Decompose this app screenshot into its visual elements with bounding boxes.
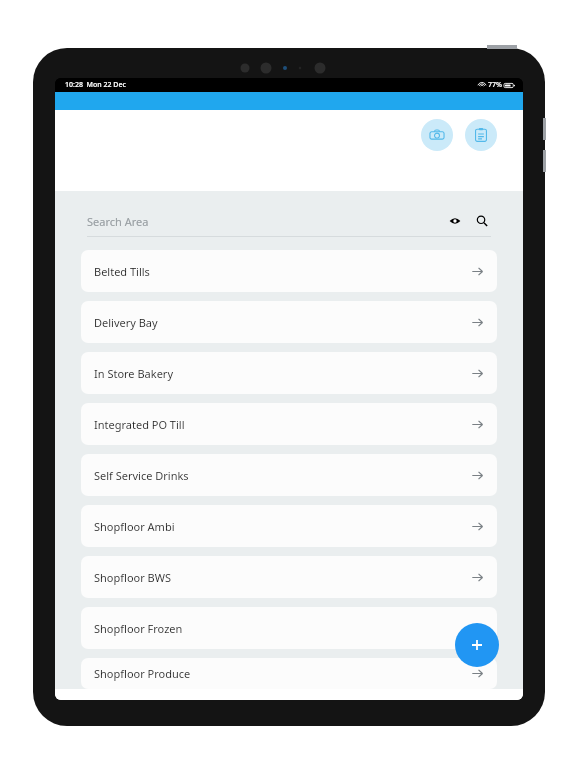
staticText: 77% (488, 80, 502, 90)
staticText: Integrated PO Till (94, 417, 185, 432)
staticText: In Store Bakery (94, 366, 173, 381)
button[interactable]: Shopfloor Ambi (81, 505, 497, 547)
button[interactable]: Search Area (87, 212, 491, 237)
button[interactable]: Self Service Drinks (81, 454, 497, 496)
button[interactable]: Belted Tills (81, 250, 497, 292)
button[interactable]: Shopfloor Produce (81, 658, 497, 689)
button[interactable]: Open checklist (465, 119, 497, 151)
staticText: 10:28 Mon 22 Dec (65, 80, 126, 90)
staticText: Shopfloor Produce (94, 666, 191, 681)
staticText: Search Area (87, 214, 446, 229)
button[interactable]: Search (473, 212, 491, 230)
staticText: Shopfloor BWS (94, 570, 172, 585)
button[interactable]: Shopfloor BWS (81, 556, 497, 598)
staticText: Shopfloor Ambi (94, 519, 175, 534)
button[interactable]: Take photo (421, 119, 453, 151)
button[interactable]: Integrated PO Till (81, 403, 497, 445)
staticText: Delivery Bay (94, 315, 158, 330)
button[interactable]: Add area (455, 623, 499, 667)
staticText: Shopfloor Frozen (94, 621, 183, 636)
button[interactable]: Show all (446, 212, 464, 230)
staticText: Self Service Drinks (94, 468, 189, 483)
staticText: Belted Tills (94, 264, 150, 279)
button[interactable]: In Store Bakery (81, 352, 497, 394)
button[interactable]: Delivery Bay (81, 301, 497, 343)
button[interactable]: Shopfloor Frozen (81, 607, 497, 649)
